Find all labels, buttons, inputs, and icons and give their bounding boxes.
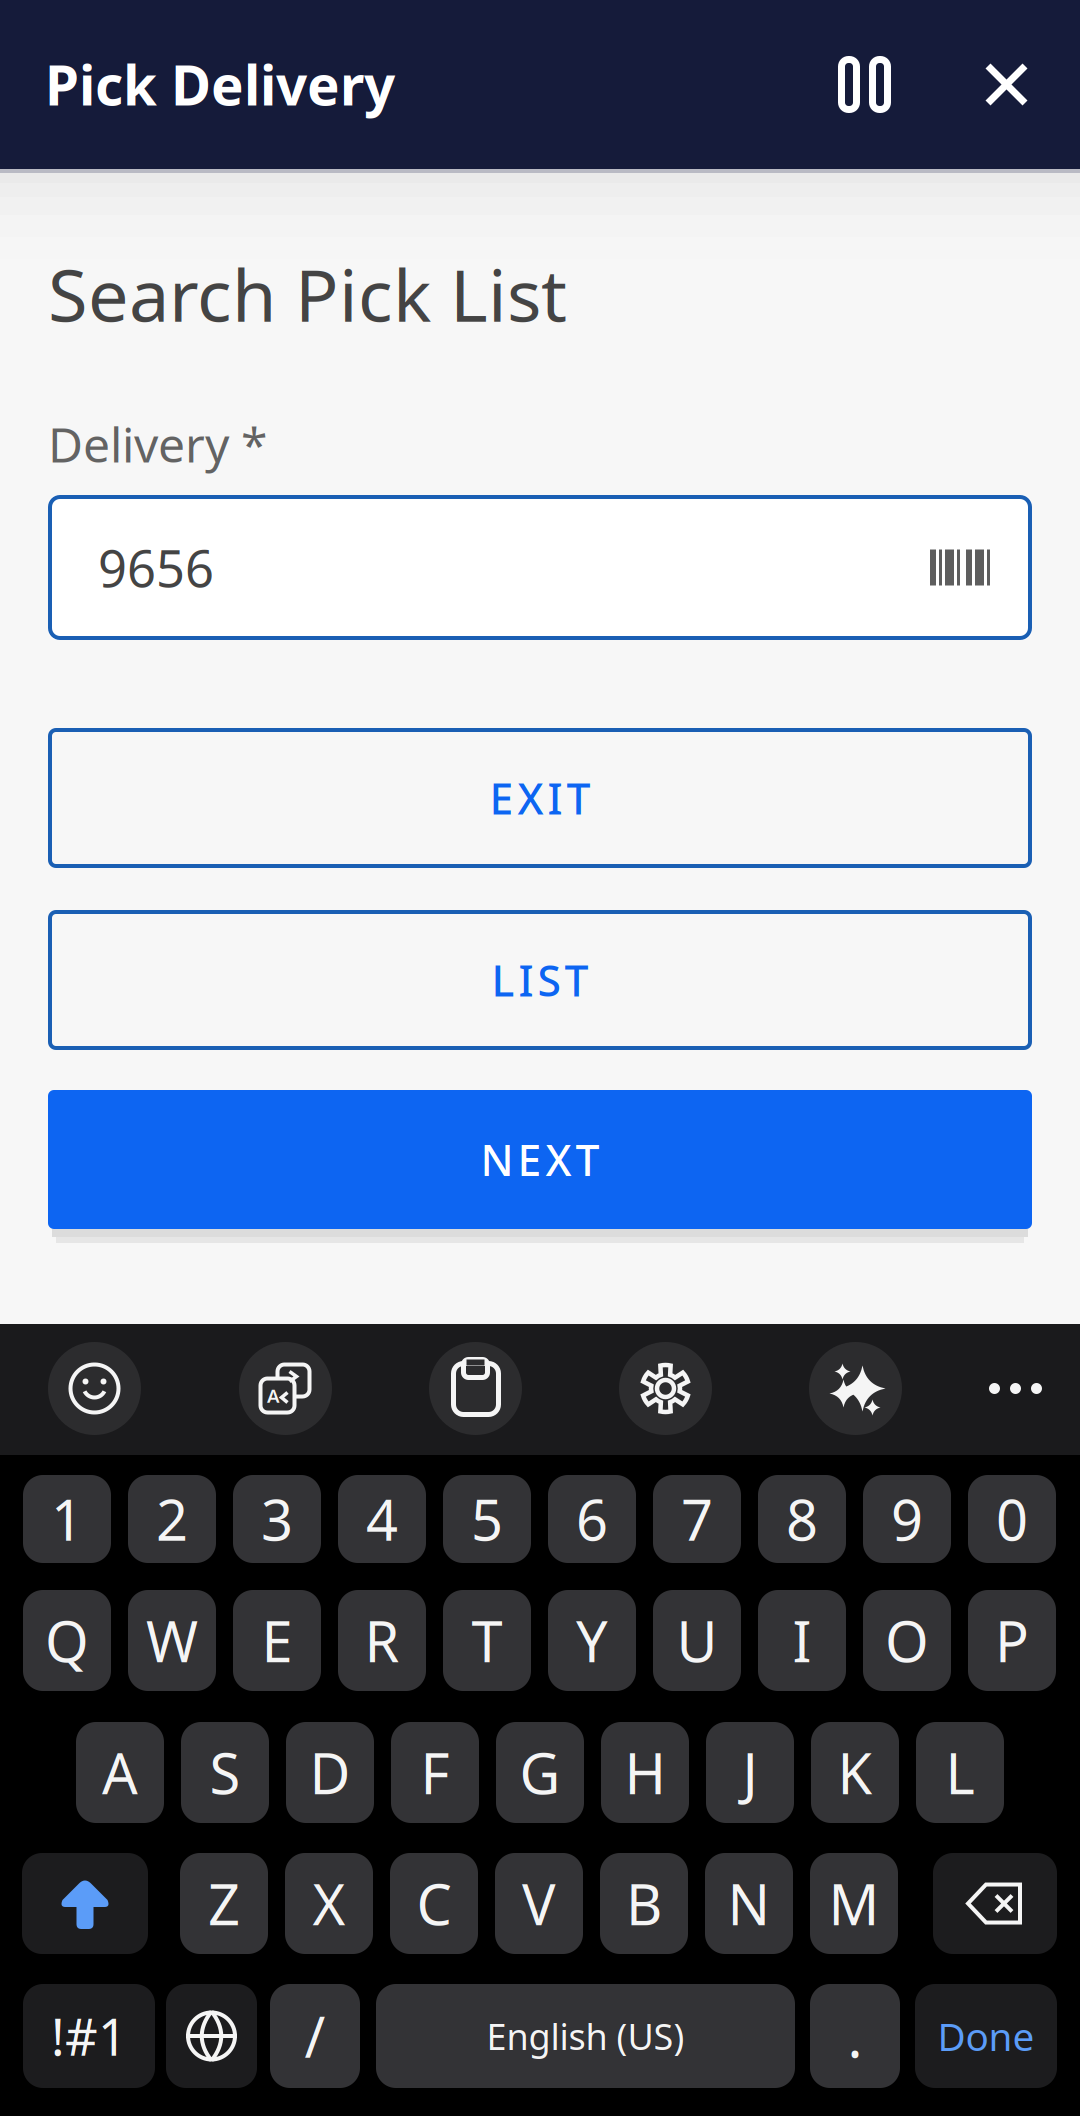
button[interactable]: L — [916, 1722, 1004, 1823]
button[interactable]: Settings — [619, 1342, 712, 1435]
button[interactable]: English (US) — [376, 1984, 795, 2088]
button[interactable]: 4 — [338, 1475, 426, 1563]
staticText: D — [309, 1735, 350, 1810]
button[interactable]: D — [286, 1722, 374, 1823]
staticText: Pick Delivery — [45, 48, 395, 121]
staticText: X — [312, 1866, 345, 1941]
button[interactable]: E — [233, 1590, 321, 1691]
staticText: O — [885, 1603, 929, 1678]
staticText: Search Pick List — [48, 246, 567, 342]
button[interactable]: Close — [984, 62, 1029, 107]
staticText: EXIT — [489, 770, 590, 826]
button[interactable]: Split view — [838, 56, 891, 113]
button[interactable]: More — [969, 1342, 1062, 1435]
button[interactable]: S — [181, 1722, 269, 1823]
staticText: L — [945, 1735, 974, 1810]
button[interactable]: V — [495, 1853, 583, 1954]
staticText: Delivery * — [48, 412, 267, 476]
button[interactable]: LIST — [48, 910, 1032, 1050]
staticText: F — [420, 1735, 449, 1810]
staticText: / — [304, 1999, 325, 2073]
button[interactable]: U — [653, 1590, 741, 1691]
button[interactable]: Z — [180, 1853, 268, 1954]
staticText: R — [364, 1603, 399, 1678]
button[interactable]: N — [705, 1853, 793, 1954]
staticText: K — [837, 1735, 872, 1810]
staticText: 6 — [576, 1482, 608, 1556]
button[interactable]: 3 — [233, 1475, 321, 1563]
button[interactable]: Switch language — [166, 1984, 257, 2088]
button[interactable]: Done — [915, 1984, 1057, 2088]
button[interactable]: Shift — [22, 1853, 148, 1954]
button[interactable]: EXIT — [48, 728, 1032, 868]
button[interactable]: . — [810, 1984, 900, 2088]
button[interactable]: 1 — [23, 1475, 111, 1563]
button[interactable]: 5 — [443, 1475, 531, 1563]
button[interactable]: 2 — [128, 1475, 216, 1563]
button[interactable]: Emoji — [48, 1342, 141, 1435]
button[interactable]: X — [285, 1853, 373, 1954]
button[interactable]: G — [496, 1722, 584, 1823]
button[interactable]: 7 — [653, 1475, 741, 1563]
staticText: 5 — [471, 1482, 503, 1556]
staticText: T — [471, 1603, 502, 1678]
button[interactable]: Q — [23, 1590, 111, 1691]
staticText: S — [209, 1735, 240, 1810]
button[interactable]: 8 — [758, 1475, 846, 1563]
staticText: 1 — [51, 1482, 83, 1556]
button[interactable]: Clipboard — [429, 1342, 522, 1435]
button[interactable]: 6 — [548, 1475, 636, 1563]
staticText: LIST — [491, 952, 588, 1008]
staticText: 4 — [366, 1482, 398, 1556]
staticText: NEXT — [480, 1131, 599, 1188]
button[interactable]: NEXT — [48, 1090, 1032, 1229]
staticText: N — [727, 1866, 770, 1941]
button[interactable]: Translate — [239, 1342, 332, 1435]
button[interactable]: T — [443, 1590, 531, 1691]
button[interactable]: C — [390, 1853, 478, 1954]
button[interactable]: M — [810, 1853, 898, 1954]
button[interactable]: R — [338, 1590, 426, 1691]
staticText: English (US) — [486, 2012, 684, 2060]
staticText: J — [742, 1735, 757, 1810]
staticText: M — [828, 1866, 879, 1941]
staticText: A — [267, 1383, 280, 1408]
button[interactable]: H — [601, 1722, 689, 1823]
button[interactable]: / — [270, 1984, 360, 2088]
staticText: I — [792, 1603, 811, 1678]
button[interactable]: 0 — [968, 1475, 1056, 1563]
staticText: W — [146, 1603, 198, 1678]
staticText: Z — [208, 1866, 240, 1941]
button[interactable]: W — [128, 1590, 216, 1691]
staticText: P — [995, 1603, 1029, 1678]
button[interactable]: O — [863, 1590, 951, 1691]
staticText: Done — [937, 2010, 1034, 2062]
button[interactable]: Delete — [933, 1853, 1057, 1954]
staticText: 3 — [261, 1482, 293, 1556]
staticText: B — [626, 1866, 662, 1941]
staticText: 7 — [681, 1482, 713, 1556]
staticText: 8 — [786, 1482, 818, 1556]
staticText: 2 — [156, 1482, 188, 1556]
staticText: U — [676, 1603, 717, 1678]
staticText: Q — [45, 1603, 89, 1678]
button[interactable]: I — [758, 1590, 846, 1691]
button[interactable]: !#1 — [23, 1984, 155, 2088]
staticText: E — [261, 1603, 292, 1678]
staticText: A — [102, 1735, 138, 1810]
button[interactable]: B — [600, 1853, 688, 1954]
staticText: 9656 — [98, 534, 214, 601]
button[interactable]: 9 — [863, 1475, 951, 1563]
button[interactable]: AI assist — [809, 1342, 902, 1435]
staticText: H — [624, 1735, 665, 1810]
button[interactable]: P — [968, 1590, 1056, 1691]
staticText: Y — [576, 1603, 608, 1678]
button[interactable]: A — [76, 1722, 164, 1823]
button[interactable]: J — [706, 1722, 794, 1823]
button[interactable]: Y — [548, 1590, 636, 1691]
button[interactable]: F — [391, 1722, 479, 1823]
staticText: G — [519, 1735, 560, 1810]
staticText: 9 — [891, 1482, 923, 1556]
button[interactable]: K — [811, 1722, 899, 1823]
staticText: 0 — [996, 1482, 1028, 1556]
